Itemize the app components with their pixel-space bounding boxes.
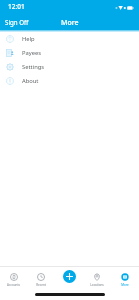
staticText: Help [22,35,35,43]
button[interactable]: Accounts [0,270,27,287]
staticText: Payees [22,49,42,57]
staticText: Accounts [7,283,20,287]
button[interactable]: Payees [0,46,139,60]
staticText: More [61,18,79,28]
button[interactable]: Locations [83,270,111,287]
button[interactable]: Help [0,32,139,46]
staticText: Sign Off [5,18,29,26]
staticText: About [22,77,39,85]
staticText: Recent [36,283,46,287]
button[interactable]: Sign Off [0,16,34,28]
button[interactable]: Settings [0,60,139,74]
staticText: Locations [90,283,104,287]
staticText: 12:01 [8,2,25,11]
button[interactable]: Recent [27,270,55,287]
button[interactable]: More [111,270,139,287]
button[interactable]: Add [63,270,76,283]
button[interactable]: About [0,74,139,88]
staticText: More [121,283,129,287]
staticText: Settings [22,63,45,71]
